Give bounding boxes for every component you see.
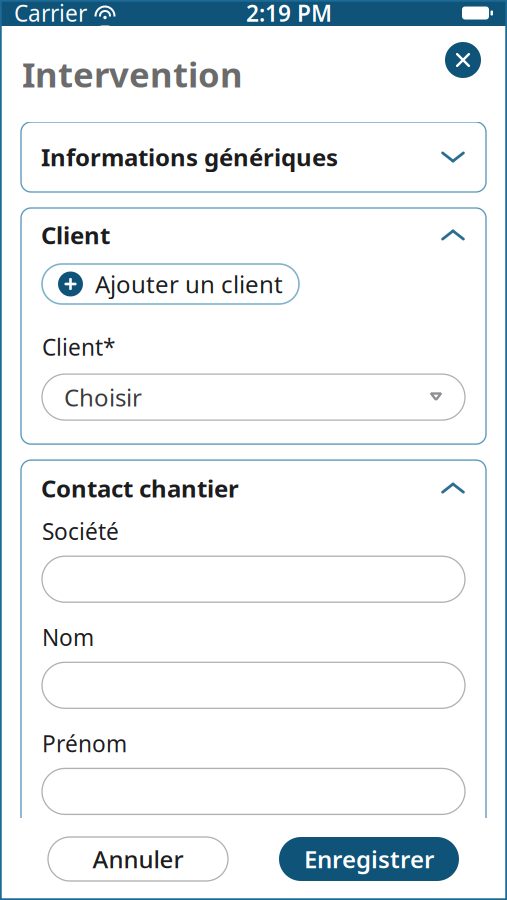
staticText: Informations génériques: [41, 141, 338, 173]
button[interactable]: Annuler: [48, 837, 228, 881]
staticText: Contact chantier: [41, 472, 239, 504]
staticText: 2:19 PM: [246, 0, 332, 28]
button[interactable]: Enregistrer: [279, 837, 459, 881]
staticText: Ajouter un client: [95, 268, 283, 300]
staticText: Carrier: [14, 0, 87, 28]
staticText: Enregistrer: [304, 843, 434, 875]
button[interactable]: Contact chantier: [21, 460, 486, 516]
button[interactable]: Ajouter un client: [42, 264, 299, 304]
staticText: Prénom: [42, 728, 127, 758]
staticText: Choisir: [64, 381, 142, 413]
button[interactable]: Fermer: [441, 38, 485, 82]
staticText: Client: [41, 219, 110, 251]
button[interactable]: Choisir: [42, 374, 465, 420]
button[interactable]: Informations génériques: [21, 122, 486, 192]
staticText: Nom: [42, 622, 94, 652]
staticText: Intervention: [22, 51, 243, 97]
staticText: Annuler: [92, 843, 183, 875]
staticText: Client*: [42, 332, 115, 362]
button[interactable]: Client: [21, 208, 486, 262]
staticText: Société: [42, 516, 119, 546]
